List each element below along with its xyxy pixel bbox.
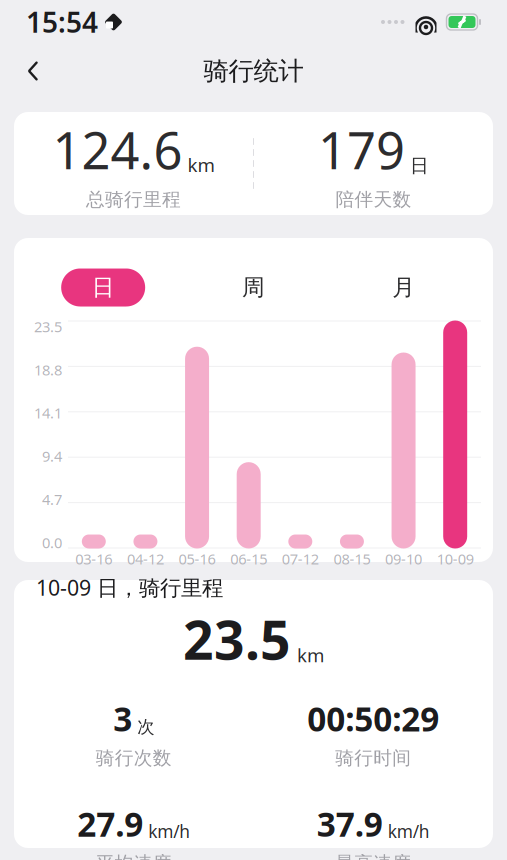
staticText: 179 (318, 116, 405, 183)
button[interactable]: 日 (61, 268, 145, 306)
staticText: 07-12 (282, 549, 319, 568)
staticText: 次 (137, 716, 154, 738)
staticText: km/h (388, 820, 430, 843)
staticText: 23.5 (34, 317, 62, 336)
staticText: 骑行时间 (335, 747, 411, 769)
staticText: 陪伴天数 (335, 188, 411, 211)
staticText: 10-09 (437, 549, 474, 568)
staticText: 09-10 (385, 549, 422, 568)
staticText: 4.7 (42, 490, 62, 509)
staticText: 平均速度 (96, 852, 172, 860)
staticText: 27.9 (77, 802, 143, 846)
staticText: 总骑行里程 (86, 188, 181, 211)
staticText: 14.1 (34, 403, 62, 423)
staticText: 3 (113, 696, 132, 741)
staticText: 03-16 (75, 549, 112, 568)
staticText: km (297, 643, 324, 667)
staticText: 08-15 (333, 549, 370, 568)
staticText: 18.8 (34, 360, 62, 379)
staticText: km/h (148, 820, 190, 843)
staticText: 10-09 日，骑行里程 (36, 573, 223, 601)
staticText: km (187, 152, 214, 177)
staticText: 124.6 (52, 116, 182, 183)
staticText: 37.9 (317, 802, 383, 846)
staticText: 最高速度 (335, 852, 411, 860)
staticText: 04-12 (127, 549, 164, 568)
button[interactable]: 周 (211, 268, 295, 306)
staticText: 骑行统计 (203, 55, 303, 86)
staticText: 00:50:29 (307, 696, 439, 741)
staticText: 周 (242, 274, 265, 301)
staticText: 23.5 (183, 604, 291, 674)
staticText: 05-16 (179, 549, 216, 568)
staticText: 骑行次数 (96, 747, 172, 769)
staticText: 日 (410, 154, 429, 177)
staticText: 0.0 (42, 533, 62, 552)
staticText: 日 (92, 274, 115, 301)
staticText: 月 (392, 274, 415, 301)
staticText: 9.4 (42, 446, 62, 466)
button[interactable]: Back (10, 48, 56, 94)
button[interactable]: 月 (362, 268, 446, 306)
staticText: 06-15 (230, 549, 267, 568)
staticText: 15:54 (26, 3, 98, 41)
